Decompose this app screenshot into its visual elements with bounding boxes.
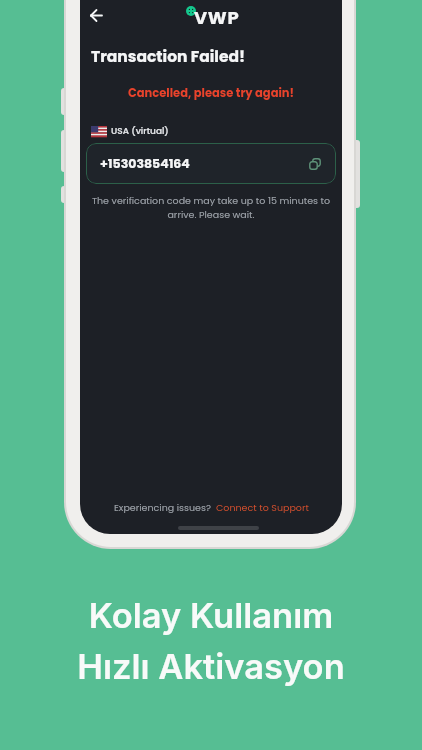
staticText: +15303854164 <box>100 155 190 172</box>
staticText: The verification code may take up to 15 … <box>80 194 342 221</box>
staticText: Kolay Kullanım <box>0 595 422 637</box>
staticText: VWP <box>194 5 240 30</box>
button[interactable]: +15303854164 <box>86 143 336 184</box>
button[interactable]: Connect to Support <box>216 501 309 514</box>
button[interactable] <box>83 2 109 28</box>
staticText: Experiencing issues? <box>114 501 211 514</box>
staticText: Transaction Failed! <box>91 46 246 68</box>
staticText: Hızlı Aktivasyon <box>0 646 422 688</box>
staticText: USA (virtual) <box>111 125 169 138</box>
staticText: Cancelled, please try again! <box>80 85 342 101</box>
